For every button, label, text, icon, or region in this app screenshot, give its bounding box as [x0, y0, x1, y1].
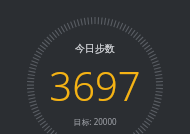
staticText: 3697 [49, 58, 141, 112]
staticText: 目标: 20000 [73, 116, 117, 127]
button[interactable]: Today's step count dial [0, 0, 190, 134]
staticText: 今日步数 [75, 42, 115, 55]
